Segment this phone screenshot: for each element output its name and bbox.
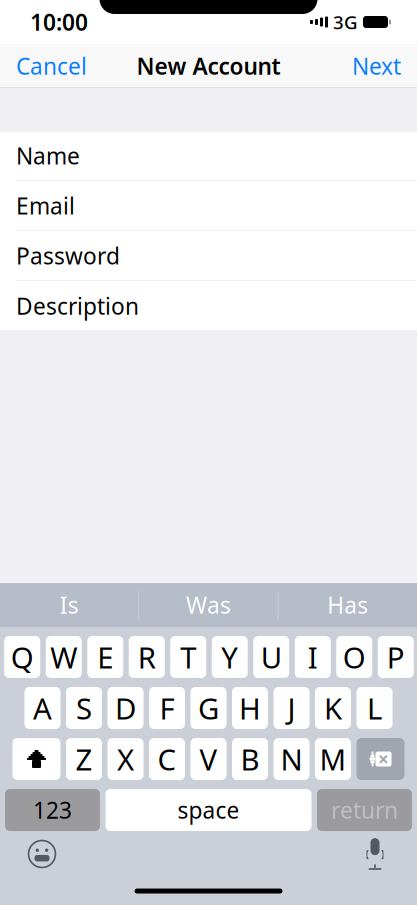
button[interactable]: O [336,636,372,678]
staticText: Next [352,51,401,81]
staticText: I [308,637,318,676]
staticText: K [324,688,342,727]
staticText: Name [16,141,80,171]
staticText: 10:00 [30,7,88,37]
staticText: return [331,795,398,825]
button[interactable]: Dictation [353,832,397,876]
button[interactable]: K [315,687,351,729]
button[interactable]: W [46,636,82,678]
button[interactable]: G [190,687,226,729]
button[interactable]: V [190,738,226,780]
staticText: Is [60,590,79,620]
button[interactable]: C [149,738,185,780]
button[interactable]: Was [139,583,278,627]
button[interactable]: H [232,687,268,729]
button[interactable]: D [107,687,143,729]
staticText: Q [11,637,34,676]
staticText: Y [221,637,238,676]
staticText: W [50,637,77,676]
button[interactable]: L [356,687,392,729]
button[interactable]: B [232,738,268,780]
button[interactable]: Name [0,131,417,181]
staticText: A [33,688,52,727]
staticText: N [280,739,302,778]
button[interactable]: Shift [12,738,60,780]
staticText: B [240,739,259,778]
staticText: G [198,688,219,727]
button[interactable]: Password [0,231,417,281]
button[interactable]: U [253,636,289,678]
button[interactable]: X [107,738,143,780]
staticText: S [76,688,92,727]
button[interactable]: Cancel [0,44,103,88]
button[interactable]: J [273,687,309,729]
staticText: × [378,747,389,771]
staticText: Cancel [16,51,87,81]
staticText: 3G [333,10,358,34]
staticText: Was [186,590,231,620]
staticText: Password [16,241,120,271]
button[interactable]: Email [0,181,417,231]
staticText: X [117,739,134,778]
staticText: L [367,688,382,727]
staticText: Email [16,191,75,221]
button[interactable]: Y [212,636,248,678]
staticText: M [319,739,346,778]
staticText: E [97,637,113,676]
button[interactable]: Next [336,44,417,88]
staticText: space [177,795,239,825]
button[interactable]: Z [66,738,102,780]
staticText: O [343,637,366,676]
button[interactable]: P [378,636,414,678]
button[interactable]: M [315,738,351,780]
button[interactable]: Q [4,636,40,678]
staticText: Has [327,590,368,620]
staticText: V [199,739,217,778]
button[interactable]: I [295,636,331,678]
staticText: R [138,637,156,676]
button[interactable]: T [170,636,206,678]
button[interactable]: Has [279,583,417,627]
button[interactable]: return [317,789,412,831]
staticText: J [287,688,295,727]
staticText: U [261,637,282,676]
staticText: D [115,688,136,727]
button[interactable]: Emoji keyboard [20,832,64,876]
button[interactable]: Description [0,281,417,331]
button[interactable]: A [24,687,60,729]
button[interactable]: Delete [356,738,404,780]
button[interactable]: R [129,636,165,678]
staticText: T [180,637,196,676]
button[interactable]: F [149,687,185,729]
staticText: Z [75,739,92,778]
button[interactable]: N [273,738,309,780]
button[interactable]: E [87,636,123,678]
button[interactable]: space [105,789,311,831]
staticText: C [157,739,176,778]
staticText: Description [16,291,139,321]
button[interactable]: 123 [5,789,100,831]
staticText: P [387,637,405,676]
staticText: New Account [136,51,280,81]
staticText: 123 [33,795,72,825]
button[interactable]: S [66,687,102,729]
staticText: F [159,688,174,727]
button[interactable]: Is [0,583,138,627]
staticText: H [239,688,261,727]
